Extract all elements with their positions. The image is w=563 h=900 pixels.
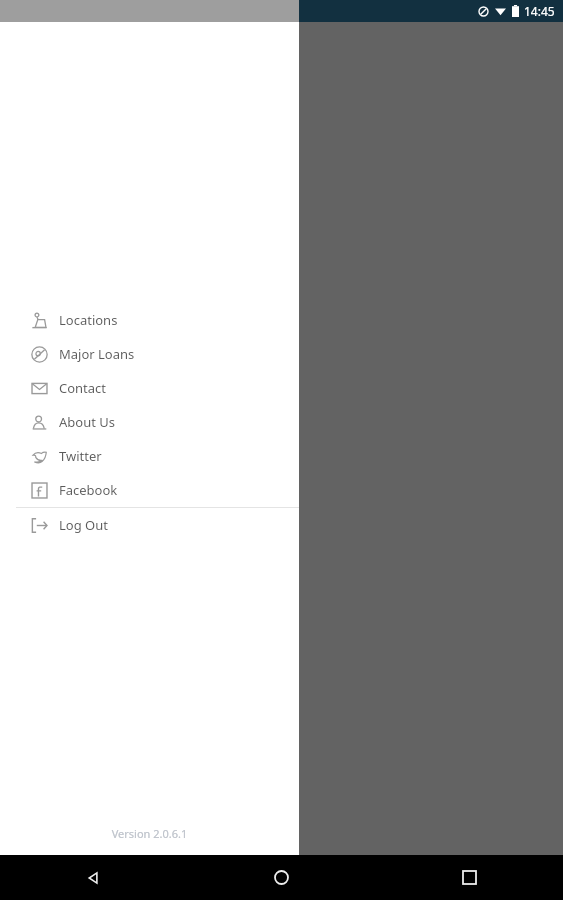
button[interactable]: Locations bbox=[281, 793, 563, 855]
staticText: Major Loans bbox=[59, 345, 135, 363]
button[interactable]: Find a Location bbox=[18, 93, 545, 182]
staticText: Facebook bbox=[59, 481, 118, 499]
staticText: Messages bbox=[113, 830, 169, 846]
button[interactable]: Messages bbox=[0, 793, 281, 855]
button[interactable]: Locations bbox=[0, 303, 299, 337]
button[interactable]: Home bbox=[187, 855, 375, 900]
button[interactable]: Facebook bbox=[0, 473, 299, 507]
button[interactable]: Twitter bbox=[0, 439, 299, 473]
staticText: Locations bbox=[59, 311, 118, 329]
staticText: Need Help? bbox=[241, 287, 322, 307]
button[interactable]: Back bbox=[0, 855, 187, 900]
staticText: Version 2.0.6.1 bbox=[0, 826, 299, 841]
button[interactable]: Major Loans bbox=[0, 337, 299, 371]
button[interactable]: Contact bbox=[0, 371, 299, 405]
staticText: 14:45 bbox=[524, 3, 555, 19]
button[interactable]: Recents bbox=[375, 855, 563, 900]
button[interactable]: About Us bbox=[0, 405, 299, 439]
staticText: Log Out bbox=[59, 516, 108, 534]
staticText: Twitter bbox=[59, 447, 102, 465]
staticText: About Us bbox=[59, 413, 116, 431]
button[interactable]: Make a Payment bbox=[18, 183, 545, 255]
staticText: Contact bbox=[59, 379, 107, 397]
button[interactable]: Log Out bbox=[0, 508, 299, 542]
